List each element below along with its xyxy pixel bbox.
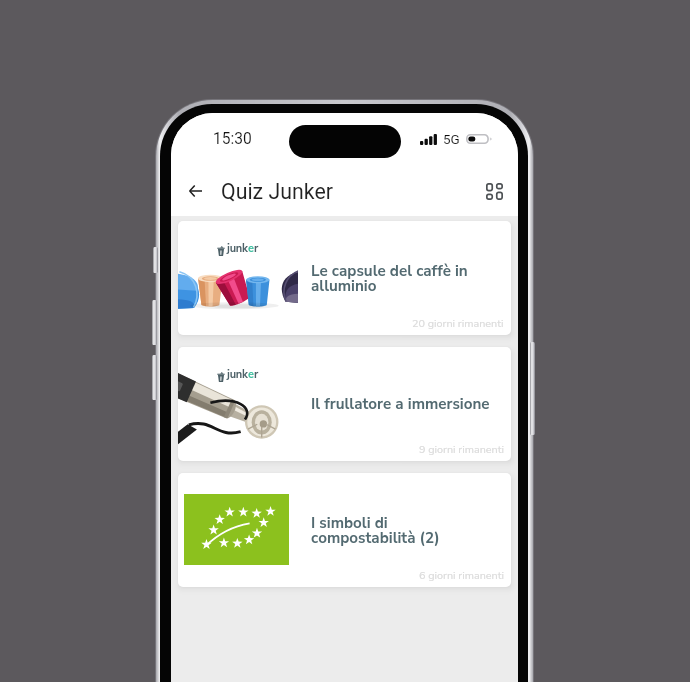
button[interactable]: junk (178, 347, 511, 461)
staticText: 5G (443, 131, 460, 147)
staticText: 15:30 (213, 130, 252, 148)
staticText: r (254, 367, 259, 382)
staticText: I simboli di compostabilità (2) (311, 513, 440, 549)
staticText: 9 giorni rimanenti (419, 442, 504, 457)
staticText: e (248, 367, 254, 382)
staticText: Le capsule del caffè in alluminio (311, 261, 468, 297)
staticText: Il frullatore a immersione (311, 394, 490, 415)
staticText: 20 giorni rimanenti (412, 316, 504, 331)
button[interactable]: Dashboard (474, 171, 514, 211)
staticText: 6 giorni rimanenti (419, 568, 504, 583)
staticText: junk (227, 241, 248, 256)
button[interactable]: Back (175, 171, 215, 211)
staticText: Quiz Junker (221, 179, 333, 204)
button[interactable]: junk (178, 221, 511, 335)
button[interactable]: I simboli di compostabilità (2) (178, 473, 511, 587)
staticText: junk (227, 367, 248, 382)
staticText: e (248, 241, 254, 256)
staticText: r (254, 241, 259, 256)
